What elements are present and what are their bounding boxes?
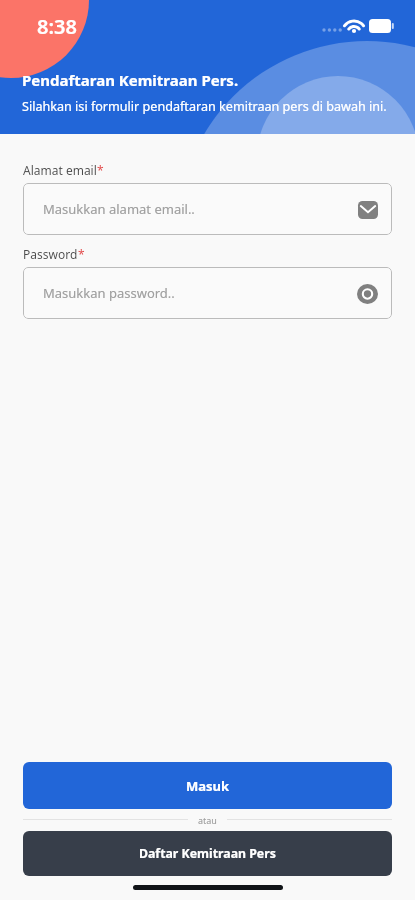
other: Show password <box>356 283 378 304</box>
staticText: 8:38 <box>37 13 77 40</box>
staticText: Password <box>23 246 78 262</box>
staticText: Masuk <box>186 777 230 795</box>
staticText: Daftar Kemitraan Pers <box>139 845 276 862</box>
button[interactable]: Daftar Kemitraan Pers <box>23 831 392 876</box>
staticText: Masukkan password.. <box>43 284 356 302</box>
button[interactable]: Masuk <box>23 762 392 809</box>
staticText: Alamat email <box>23 162 97 178</box>
staticText: Pendaftaran Kemitraan Pers. <box>22 70 239 90</box>
staticText: * <box>97 162 104 178</box>
staticText: atau <box>198 814 217 826</box>
staticText: Silahkan isi formulir pendaftaran kemitr… <box>22 98 387 115</box>
staticText: * <box>78 246 85 262</box>
other: Email <box>357 200 378 219</box>
button[interactable]: Masukkan alamat email.. <box>23 183 392 235</box>
button[interactable]: Masukkan password.. <box>23 267 392 319</box>
staticText: Masukkan alamat email.. <box>43 200 357 218</box>
